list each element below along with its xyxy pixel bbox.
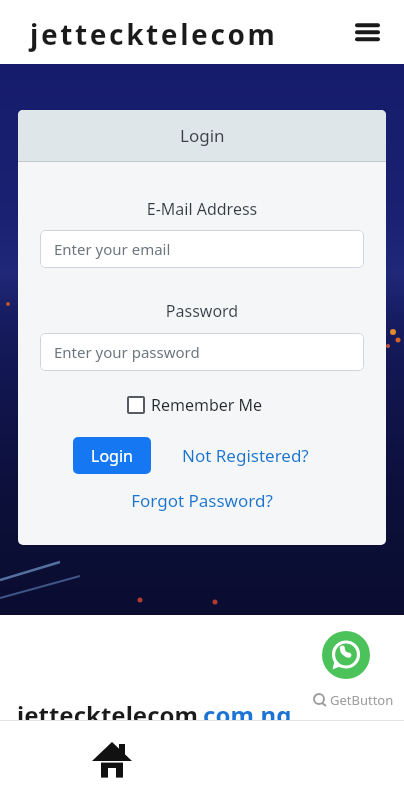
staticText: Login	[180, 124, 225, 147]
staticText: jettecktelecom	[30, 15, 278, 53]
button[interactable]: Not Registered?	[182, 437, 309, 474]
button[interactable]: Forgot Password?	[18, 489, 386, 512]
button[interactable]: Login	[73, 437, 151, 474]
button[interactable]	[322, 631, 370, 679]
button[interactable]	[347, 14, 387, 50]
button[interactable]: Remember Me	[127, 394, 263, 416]
staticText: Remember Me	[151, 394, 263, 416]
staticText: Not Registered?	[182, 444, 309, 467]
staticText: Password	[18, 300, 386, 322]
staticText: Login	[91, 445, 133, 467]
staticText: Enter your password	[54, 342, 200, 362]
staticText: com.ng	[203, 698, 292, 720]
button[interactable]: Enter your password	[40, 333, 364, 371]
button[interactable]	[86, 735, 134, 783]
staticText: jettecktelecom	[17, 698, 198, 720]
button[interactable]: Enter your email	[40, 230, 364, 268]
staticText: E-Mail Address	[18, 198, 386, 220]
staticText: GetButton	[330, 691, 394, 709]
staticText: Enter your email	[54, 239, 171, 259]
